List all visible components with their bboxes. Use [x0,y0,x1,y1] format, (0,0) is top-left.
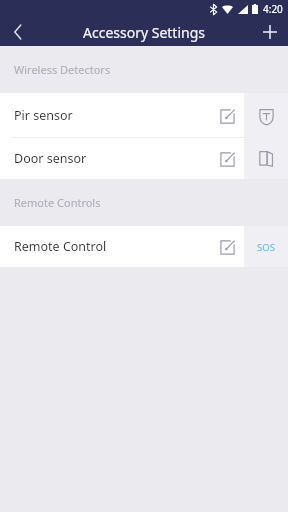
staticText: Accessory Settings [83,23,205,42]
button[interactable]: Remote Control [0,226,244,267]
button[interactable]: Door sensor [0,138,244,179]
button[interactable]: Pir sensor [0,93,244,138]
button[interactable]: SOS [249,234,283,260]
button[interactable]: Edit Remote Control [210,230,244,264]
staticText: Door sensor [14,150,210,167]
staticText: Wireless Detectors [14,62,111,77]
button[interactable]: Pir sensor type [253,103,279,129]
staticText: Pir sensor [14,107,210,124]
button[interactable]: Pir sensor type [244,93,288,138]
button[interactable]: Door sensor type [253,146,279,172]
button[interactable]: Edit Pir sensor [210,99,244,133]
button[interactable]: Add accessory [252,18,288,46]
staticText: SOS [257,241,275,254]
button[interactable]: Back [0,18,36,46]
button[interactable]: SOS [244,226,288,267]
button[interactable]: Door sensor type [244,138,288,179]
staticText: Remote Control [14,238,210,255]
button[interactable]: Edit Door sensor [210,142,244,176]
staticText: 4:20 [263,2,283,16]
staticText: Remote Controls [14,195,101,210]
